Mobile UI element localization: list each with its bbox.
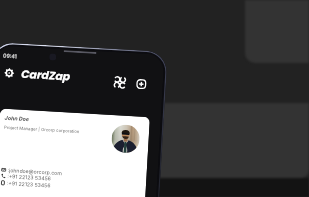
staticText: :+91 22123 53456 (7, 173, 51, 182)
button[interactable]: John Doe (0, 108, 150, 197)
staticText: 09:41 (3, 53, 17, 59)
staticText: :johndoe@orcorp.com (7, 167, 63, 176)
staticText: :+91 22123 53456 (7, 180, 51, 188)
staticText: CardZap (21, 67, 72, 85)
button[interactable]: Share card (114, 76, 126, 89)
button[interactable]: Add card (135, 78, 147, 90)
staticText: John Doe (4, 115, 30, 122)
staticText: Project Manager | Orcorp corporation (4, 125, 80, 134)
button[interactable]: Settings (4, 68, 15, 78)
